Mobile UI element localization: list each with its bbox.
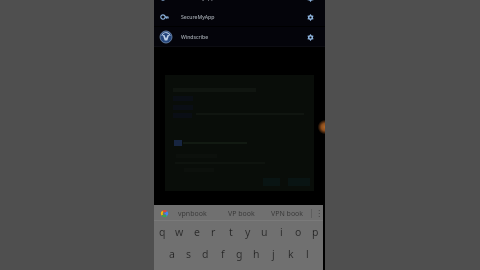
staticText: k xyxy=(288,247,294,261)
button[interactable]: o xyxy=(290,221,307,243)
staticText: VPN book xyxy=(271,209,304,219)
button[interactable]: e xyxy=(188,221,205,243)
staticText: o xyxy=(295,225,302,239)
button[interactable]: f xyxy=(214,243,231,265)
staticText: h xyxy=(253,247,260,261)
staticText: j xyxy=(272,247,275,261)
staticText: SecureMyApp xyxy=(181,0,215,1)
button[interactable]: l xyxy=(299,243,316,265)
staticText: a xyxy=(169,247,175,261)
button[interactable]: Google search xyxy=(158,206,170,221)
staticText: y xyxy=(245,225,251,239)
button[interactable]: SecureMyApp xyxy=(154,0,325,7)
button[interactable]: vpnbook xyxy=(171,206,213,221)
button[interactable]: d xyxy=(197,243,214,265)
button[interactable]: SecureMyApp xyxy=(154,7,325,26)
button[interactable]: s xyxy=(180,243,197,265)
button[interactable]: g xyxy=(231,243,248,265)
staticText: r xyxy=(211,225,216,239)
staticText: s xyxy=(186,247,192,261)
staticText: VP book xyxy=(228,209,255,219)
button[interactable]: Settings xyxy=(302,9,318,25)
button[interactable]: h xyxy=(248,243,265,265)
staticText: t xyxy=(229,225,233,239)
staticText: g xyxy=(236,247,243,261)
button[interactable]: Windscribe xyxy=(154,27,325,46)
button[interactable]: u xyxy=(256,221,273,243)
button[interactable]: q xyxy=(154,221,171,243)
staticText: d xyxy=(202,247,209,261)
button[interactable]: Settings xyxy=(302,0,318,6)
staticText: vpnbook xyxy=(178,209,207,219)
staticText: Windscribe xyxy=(181,33,209,40)
button[interactable]: w xyxy=(171,221,188,243)
staticText: i xyxy=(280,225,283,239)
staticText: q xyxy=(159,225,166,239)
button[interactable]: p xyxy=(307,221,323,243)
button[interactable]: Settings xyxy=(302,29,318,45)
staticText: e xyxy=(194,225,200,239)
staticText: ⋮ xyxy=(315,209,323,218)
staticText: f xyxy=(221,247,225,261)
button[interactable]: a xyxy=(163,243,180,265)
staticText: l xyxy=(306,247,309,261)
button[interactable]: VP book xyxy=(220,206,262,221)
button[interactable]: y xyxy=(239,221,256,243)
button[interactable]: t xyxy=(222,221,239,243)
staticText: w xyxy=(175,225,184,239)
button[interactable]: r xyxy=(205,221,222,243)
button[interactable]: i xyxy=(273,221,290,243)
button[interactable]: More suggestions xyxy=(313,206,325,221)
button[interactable]: j xyxy=(265,243,282,265)
button[interactable]: VPN book xyxy=(266,206,308,221)
staticText: SecureMyApp xyxy=(181,13,215,20)
button[interactable]: k xyxy=(282,243,299,265)
staticText: u xyxy=(261,225,268,239)
staticText: p xyxy=(312,225,319,239)
